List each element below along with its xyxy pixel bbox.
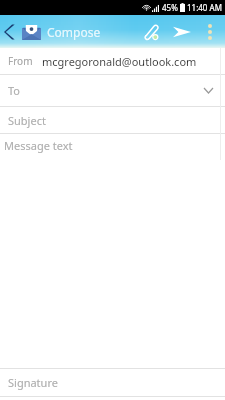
staticText: Signature [8, 375, 58, 390]
staticText: Subject [8, 113, 46, 128]
staticText: 45% [162, 2, 178, 13]
staticText: 11:40 AM [187, 2, 222, 13]
button[interactable]: Send [166, 15, 198, 48]
button[interactable]: Expand recipients [195, 75, 221, 106]
button[interactable]: To [0, 75, 225, 106]
button[interactable]: From [0, 48, 225, 74]
button[interactable]: Subject [0, 107, 225, 133]
staticText: Compose [47, 24, 101, 40]
staticText: mcgregoronald@outlook.com [42, 54, 197, 69]
button[interactable]: Back [0, 15, 20, 48]
button[interactable]: Message text [0, 134, 225, 334]
button[interactable]: Attach [136, 15, 166, 48]
staticText: From [8, 54, 33, 68]
staticText: Message text [4, 138, 73, 153]
button[interactable]: More options [198, 15, 222, 48]
button[interactable]: Signature [0, 369, 225, 396]
staticText: To [8, 83, 21, 98]
